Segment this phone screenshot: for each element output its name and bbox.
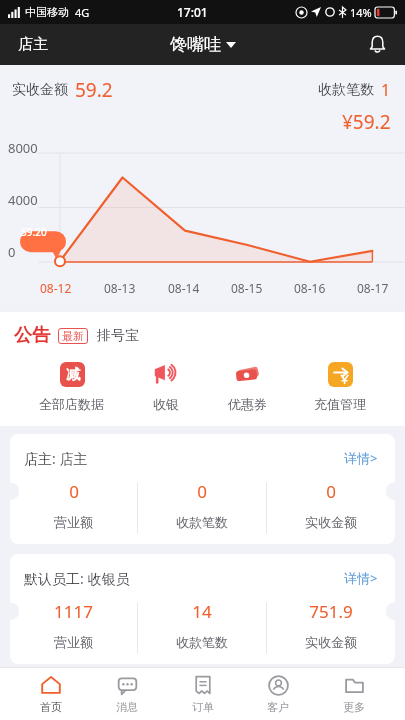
- button[interactable]: 充值管理: [306, 357, 374, 414]
- staticText: 实收金额: [305, 514, 357, 530]
- staticText: 收款笔数: [176, 634, 228, 650]
- staticText: 1: [381, 79, 391, 101]
- staticText: 14: [192, 600, 212, 623]
- staticText: 08-16: [294, 280, 326, 296]
- staticText: 客户: [267, 700, 289, 714]
- staticText: 收款笔数: [176, 514, 228, 530]
- staticText: 默认员工: 收银员: [24, 569, 130, 588]
- staticText: 0: [197, 480, 207, 503]
- staticText: 08-14: [168, 280, 200, 296]
- staticText: 中国移动: [25, 5, 69, 19]
- staticText: 0: [69, 480, 79, 503]
- staticText: 减: [66, 366, 80, 384]
- staticText: 08-17: [357, 280, 389, 296]
- staticText: 1117: [54, 600, 93, 623]
- button[interactable]: 订单: [178, 670, 228, 718]
- staticText: 首页: [40, 700, 62, 714]
- button[interactable]: 0: [10, 480, 137, 530]
- staticText: 店主: [18, 35, 48, 54]
- staticText: 营业额: [54, 634, 93, 650]
- staticText: 消息: [116, 700, 138, 714]
- staticText: 8000: [8, 139, 38, 157]
- staticText: ¥59.2: [342, 109, 391, 135]
- staticText: 收银: [153, 396, 179, 412]
- staticText: 08-12: [40, 280, 72, 296]
- staticText: 0: [8, 243, 16, 261]
- staticText: 08-13: [104, 280, 136, 296]
- button[interactable]: 更多: [329, 670, 379, 718]
- staticText: 4G: [75, 5, 90, 20]
- button[interactable]: 详情>: [341, 446, 381, 470]
- button[interactable]: 馋嘴哇: [166, 30, 240, 59]
- staticText: 14%: [350, 5, 372, 20]
- button[interactable]: 首页: [26, 670, 76, 718]
- staticText: 08-15: [231, 280, 263, 296]
- button[interactable]: 1117: [10, 600, 137, 650]
- staticText: 公告: [14, 324, 50, 347]
- button[interactable]: 751.9: [267, 600, 395, 650]
- button[interactable]: 14: [138, 600, 266, 650]
- button[interactable]: 0: [267, 480, 395, 530]
- button[interactable]: 优惠券: [220, 357, 275, 414]
- button[interactable]: 客户: [253, 670, 303, 718]
- staticText: 实收金额: [12, 81, 68, 99]
- staticText: 排号宝: [97, 327, 139, 345]
- staticText: 详情>: [344, 449, 378, 467]
- staticText: 59.20: [21, 225, 47, 239]
- staticText: 订单: [192, 700, 214, 714]
- button[interactable]: 消息: [102, 670, 152, 718]
- staticText: 0: [326, 480, 336, 503]
- staticText: 营业额: [54, 514, 93, 530]
- button[interactable]: 减: [31, 357, 112, 414]
- button[interactable]: 公告: [0, 312, 405, 353]
- staticText: 详情>: [344, 569, 378, 587]
- staticText: 收款笔数: [318, 81, 374, 99]
- button[interactable]: 店主: [14, 31, 52, 58]
- staticText: 实收金额: [305, 634, 357, 650]
- button[interactable]: Notifications: [364, 31, 391, 58]
- staticText: 751.9: [309, 600, 353, 623]
- staticText: 4000: [8, 191, 38, 209]
- staticText: 馋嘴哇: [170, 34, 221, 55]
- staticText: 17:01: [177, 4, 208, 20]
- staticText: 店主: 店主: [24, 449, 88, 468]
- button[interactable]: 详情>: [341, 566, 381, 590]
- staticText: 59.2: [75, 77, 113, 103]
- staticText: 充值管理: [314, 396, 366, 412]
- staticText: 优惠券: [228, 396, 267, 412]
- button[interactable]: 0: [138, 480, 266, 530]
- button[interactable]: 收银: [143, 357, 189, 414]
- staticText: 最新: [62, 329, 84, 343]
- staticText: 全部店数据: [39, 396, 104, 412]
- staticText: 更多: [343, 700, 365, 714]
